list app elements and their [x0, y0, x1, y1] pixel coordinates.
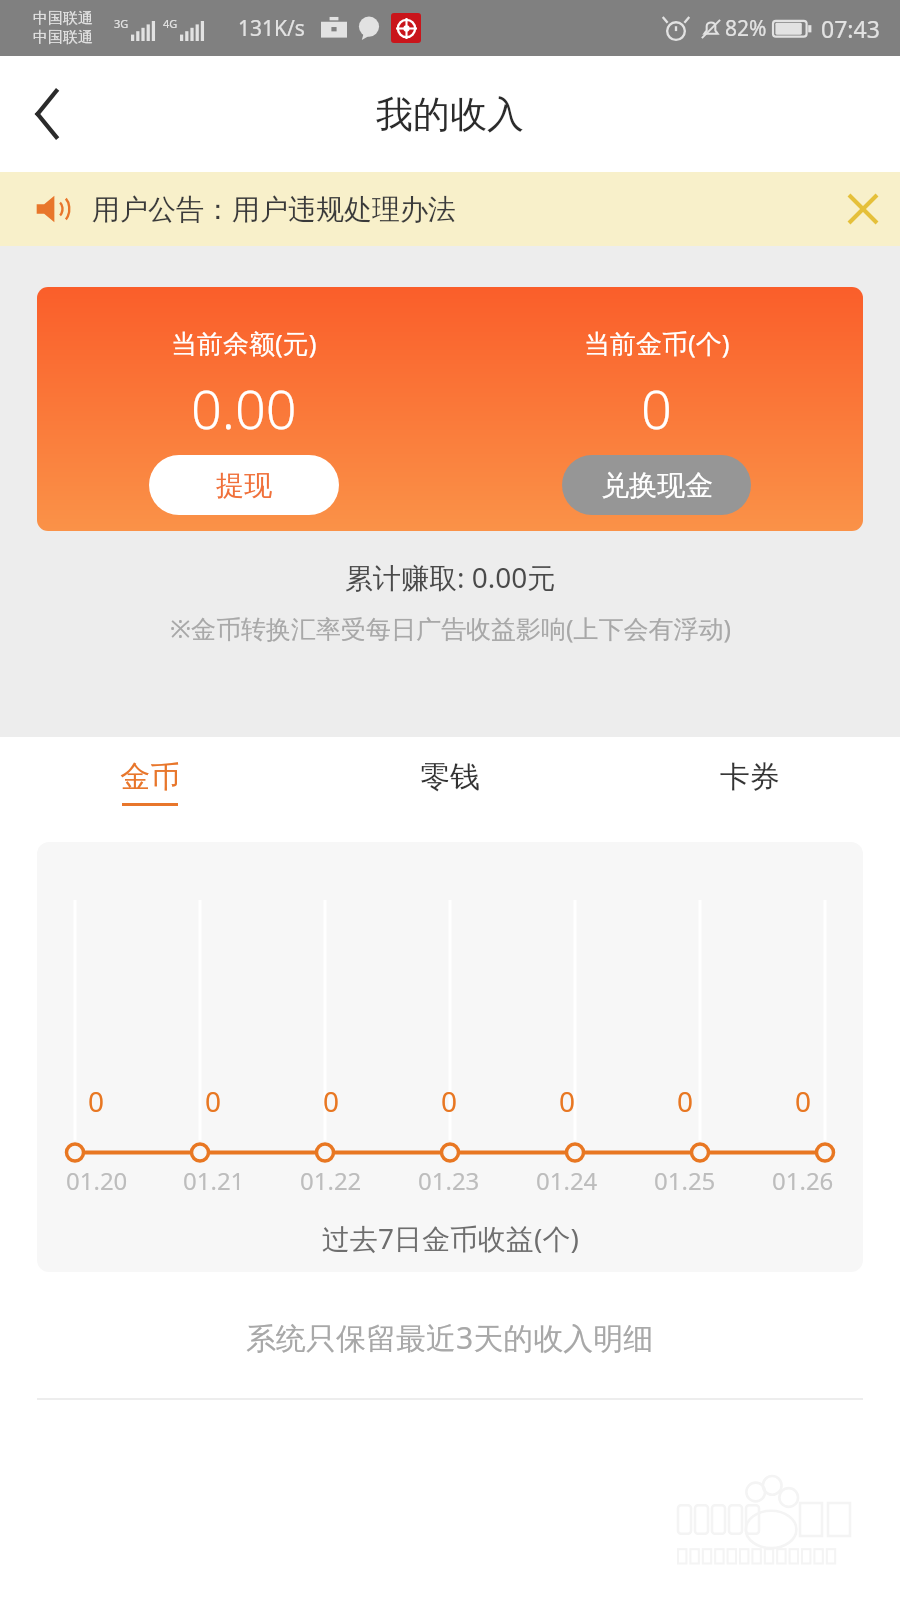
button[interactable]: 用户公告：用户违规处理办法 [0, 172, 900, 246]
staticText: 01.23 [418, 1164, 480, 1197]
staticText: 提现 [216, 468, 272, 503]
staticText: 当前金币(个) [584, 325, 730, 361]
staticText: 零钱 [420, 758, 480, 796]
staticText: 0 [677, 1082, 694, 1120]
button[interactable]: 金币 [0, 737, 300, 827]
staticText: 系统只保留最近3天的收入明细 [246, 1317, 654, 1358]
staticText: 0 [641, 371, 672, 445]
staticText: 0 [323, 1082, 340, 1120]
button[interactable]: 零钱 [300, 737, 600, 827]
staticText: 当前余额(元) [171, 325, 317, 361]
staticText: 01.22 [300, 1164, 362, 1197]
staticText: 中国联通 [33, 28, 93, 47]
staticText: 中国联通 [33, 9, 93, 28]
staticText: 4G [163, 16, 178, 31]
staticText: 0 [441, 1082, 458, 1120]
staticText: 01.25 [654, 1164, 716, 1197]
staticText: 累计赚取: 0.00元 [345, 558, 556, 596]
staticText: 过去7日金币收益(个) [322, 1219, 579, 1257]
staticText: 82% [725, 14, 767, 43]
button[interactable]: 提现 [149, 455, 339, 515]
staticText: 用户公告：用户违规处理办法 [92, 192, 456, 227]
staticText: 兑换现金 [601, 468, 713, 503]
staticText: 0.00 [191, 371, 297, 445]
button[interactable]: 卡券 [600, 737, 900, 827]
button[interactable]: 兑换现金 [562, 455, 751, 515]
staticText: 0 [795, 1082, 812, 1120]
button[interactable]: Back [0, 66, 96, 162]
staticText: ※金币转换汇率受每日广告收益影响(上下会有浮动) [170, 611, 731, 645]
staticText: 01.21 [183, 1164, 245, 1197]
staticText: 131K/s [238, 14, 305, 43]
staticText: 0 [205, 1082, 222, 1120]
staticText: 金币 [120, 758, 180, 796]
button[interactable]: Close notice [826, 172, 900, 246]
staticText: 0 [559, 1082, 576, 1120]
staticText: 07:43 [821, 13, 880, 44]
staticText: 01.24 [536, 1164, 598, 1197]
staticText: 卡券 [720, 758, 780, 796]
staticText: 0 [88, 1082, 105, 1120]
staticText: 3G [114, 16, 129, 31]
staticText: 01.20 [66, 1164, 128, 1197]
staticText: 01.26 [772, 1164, 834, 1197]
staticText: 我的收入 [376, 91, 524, 138]
